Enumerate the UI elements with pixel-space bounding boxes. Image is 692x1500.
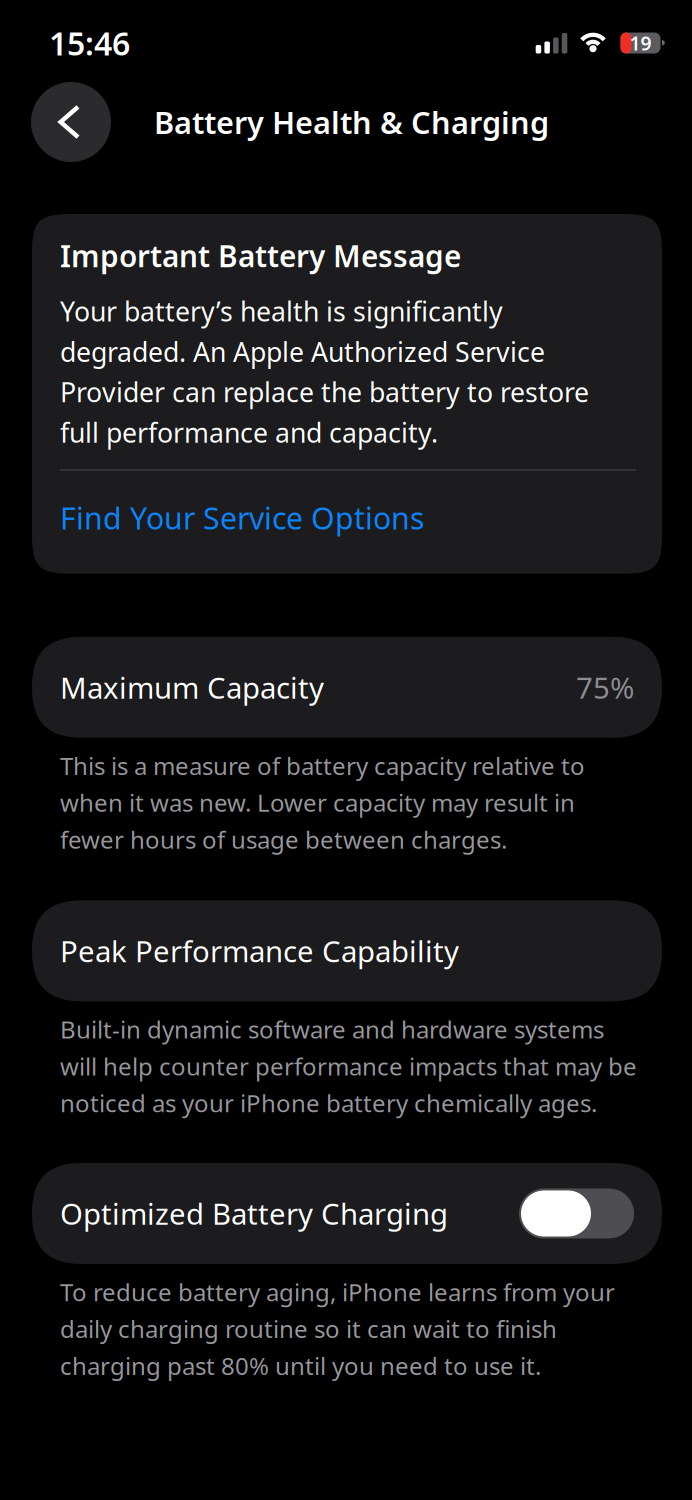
- staticText: Built-in dynamic software and hardware s…: [60, 1013, 637, 1119]
- staticText: Find Your Service Options: [60, 498, 424, 538]
- staticText: Battery Health & Charging: [154, 102, 549, 142]
- staticText: 75%: [576, 668, 634, 707]
- button[interactable]: Back: [31, 82, 111, 162]
- staticText: Maximum Capacity: [60, 668, 324, 707]
- button[interactable]: Optimized Battery Charging, off: [519, 1188, 634, 1238]
- staticText: Important Battery Message: [60, 236, 461, 275]
- staticText: 15:46: [49, 22, 130, 64]
- staticText: To reduce battery aging, iPhone learns f…: [60, 1276, 615, 1382]
- staticText: This is a measure of battery capacity re…: [60, 750, 585, 855]
- button[interactable]: Find Your Service Options: [60, 498, 424, 538]
- staticText: Your battery’s health is significantly d…: [60, 293, 589, 450]
- staticText: Optimized Battery Charging: [60, 1194, 448, 1233]
- button[interactable]: Peak Performance Capability: [0, 900, 692, 1001]
- staticText: 19: [629, 30, 651, 56]
- staticText: Peak Performance Capability: [60, 931, 459, 970]
